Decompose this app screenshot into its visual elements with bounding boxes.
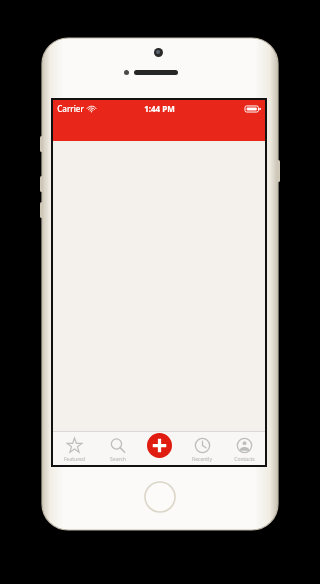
staticText: Contacts — [234, 456, 255, 463]
staticText: Search — [110, 456, 126, 463]
button[interactable]: Home — [144, 481, 176, 513]
button[interactable]: Recently — [181, 431, 223, 465]
button[interactable]: Featured — [53, 431, 96, 465]
button[interactable]: Add — [147, 433, 172, 458]
staticText: 1:44 PM — [144, 103, 175, 114]
staticText: Featured — [64, 456, 85, 463]
button[interactable]: Search — [96, 431, 139, 465]
button[interactable]: Contacts — [223, 431, 265, 465]
staticText: Recently — [192, 456, 212, 463]
staticText: Carrier — [57, 103, 84, 114]
